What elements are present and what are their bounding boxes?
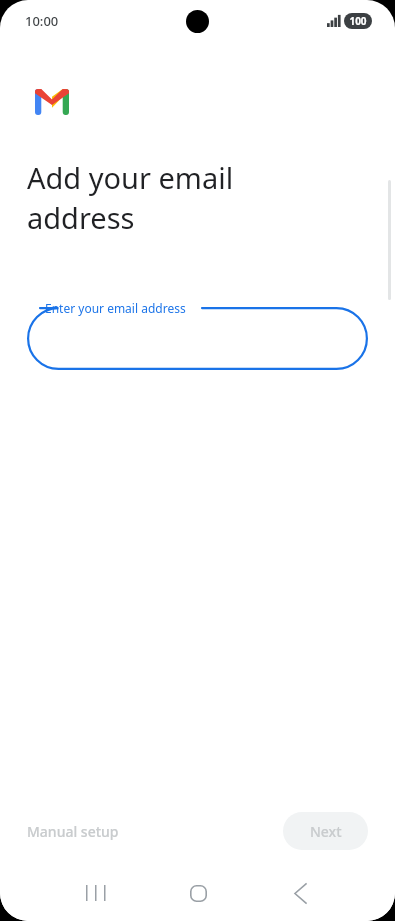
button[interactable]: Recent apps <box>71 869 119 917</box>
staticText: Enter your email address <box>45 300 186 316</box>
button[interactable]: Home <box>174 869 222 917</box>
staticText: 100 <box>349 14 367 28</box>
staticText: 10:00 <box>25 12 59 30</box>
staticText: Next <box>310 822 342 841</box>
staticText: Manual setup <box>27 822 119 841</box>
button[interactable]: Enter your email address <box>27 307 368 370</box>
staticText: Add your email address <box>27 158 327 238</box>
button[interactable]: Manual setup <box>15 813 131 850</box>
button[interactable]: Back <box>276 869 324 917</box>
button[interactable]: Next <box>283 812 368 850</box>
